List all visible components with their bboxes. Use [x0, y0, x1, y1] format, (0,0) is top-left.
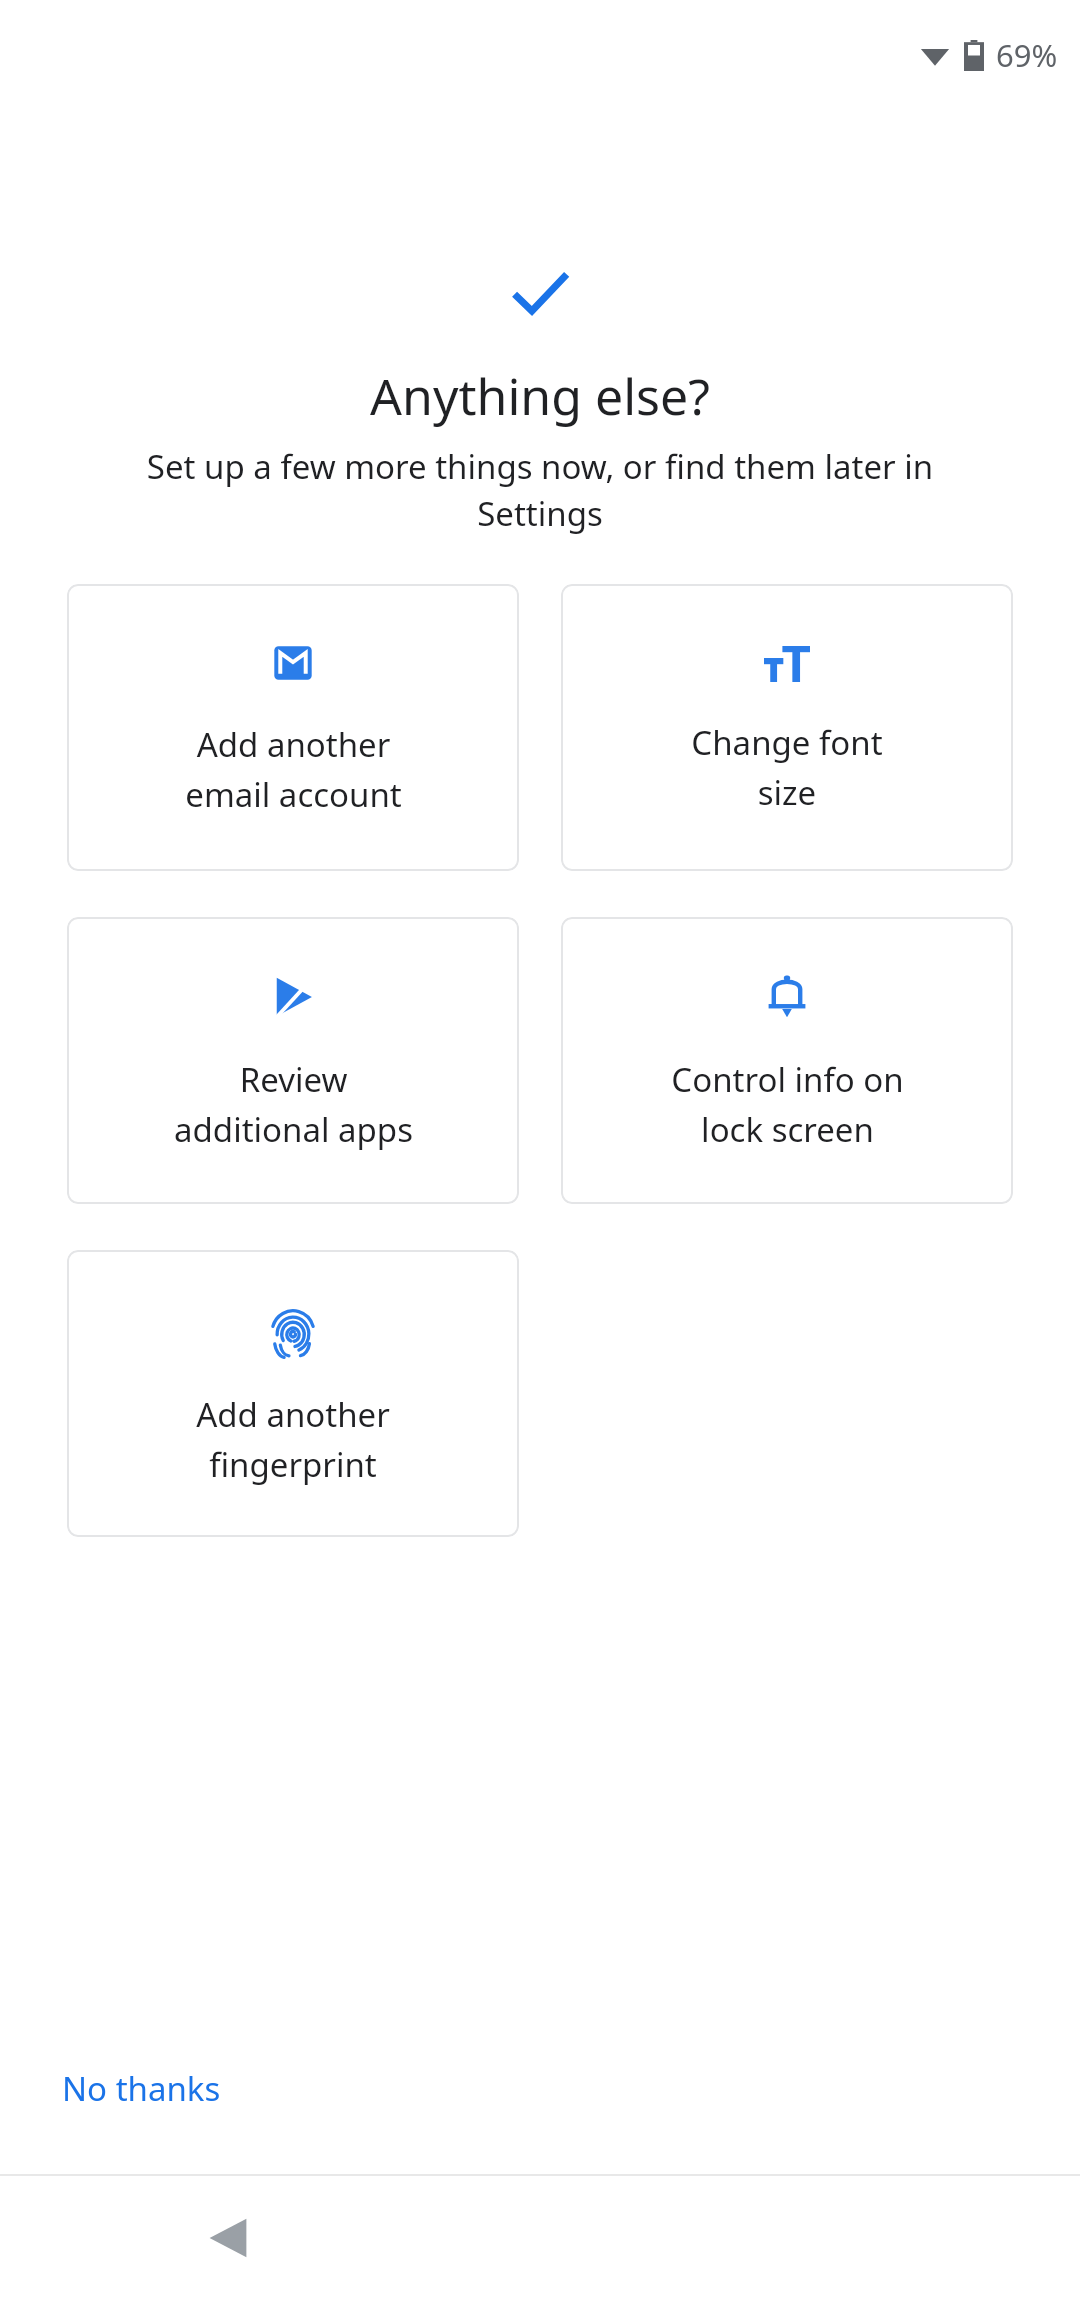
staticText: Set up a few more things now, or find th…	[120, 444, 960, 536]
button[interactable]: Add another fingerprint	[67, 1250, 519, 1537]
staticText: Control info on lock screen	[671, 1057, 904, 1152]
button[interactable]: No thanks	[36, 2052, 247, 2125]
button[interactable]: Add another email account	[67, 584, 519, 871]
staticText: No thanks	[62, 2066, 221, 2111]
staticText: 69%	[996, 34, 1058, 76]
staticText: Anything else?	[370, 362, 710, 430]
staticText: Review additional apps	[174, 1057, 413, 1152]
staticText: Change font size	[691, 720, 883, 815]
staticText: Add another email account	[185, 722, 402, 817]
button[interactable]: Change font size	[561, 584, 1013, 871]
button[interactable]: Control info on lock screen	[561, 917, 1013, 1204]
button[interactable]: Back	[168, 2176, 288, 2300]
staticText: Add another fingerprint	[196, 1392, 390, 1487]
button[interactable]: Review additional apps	[67, 917, 519, 1204]
